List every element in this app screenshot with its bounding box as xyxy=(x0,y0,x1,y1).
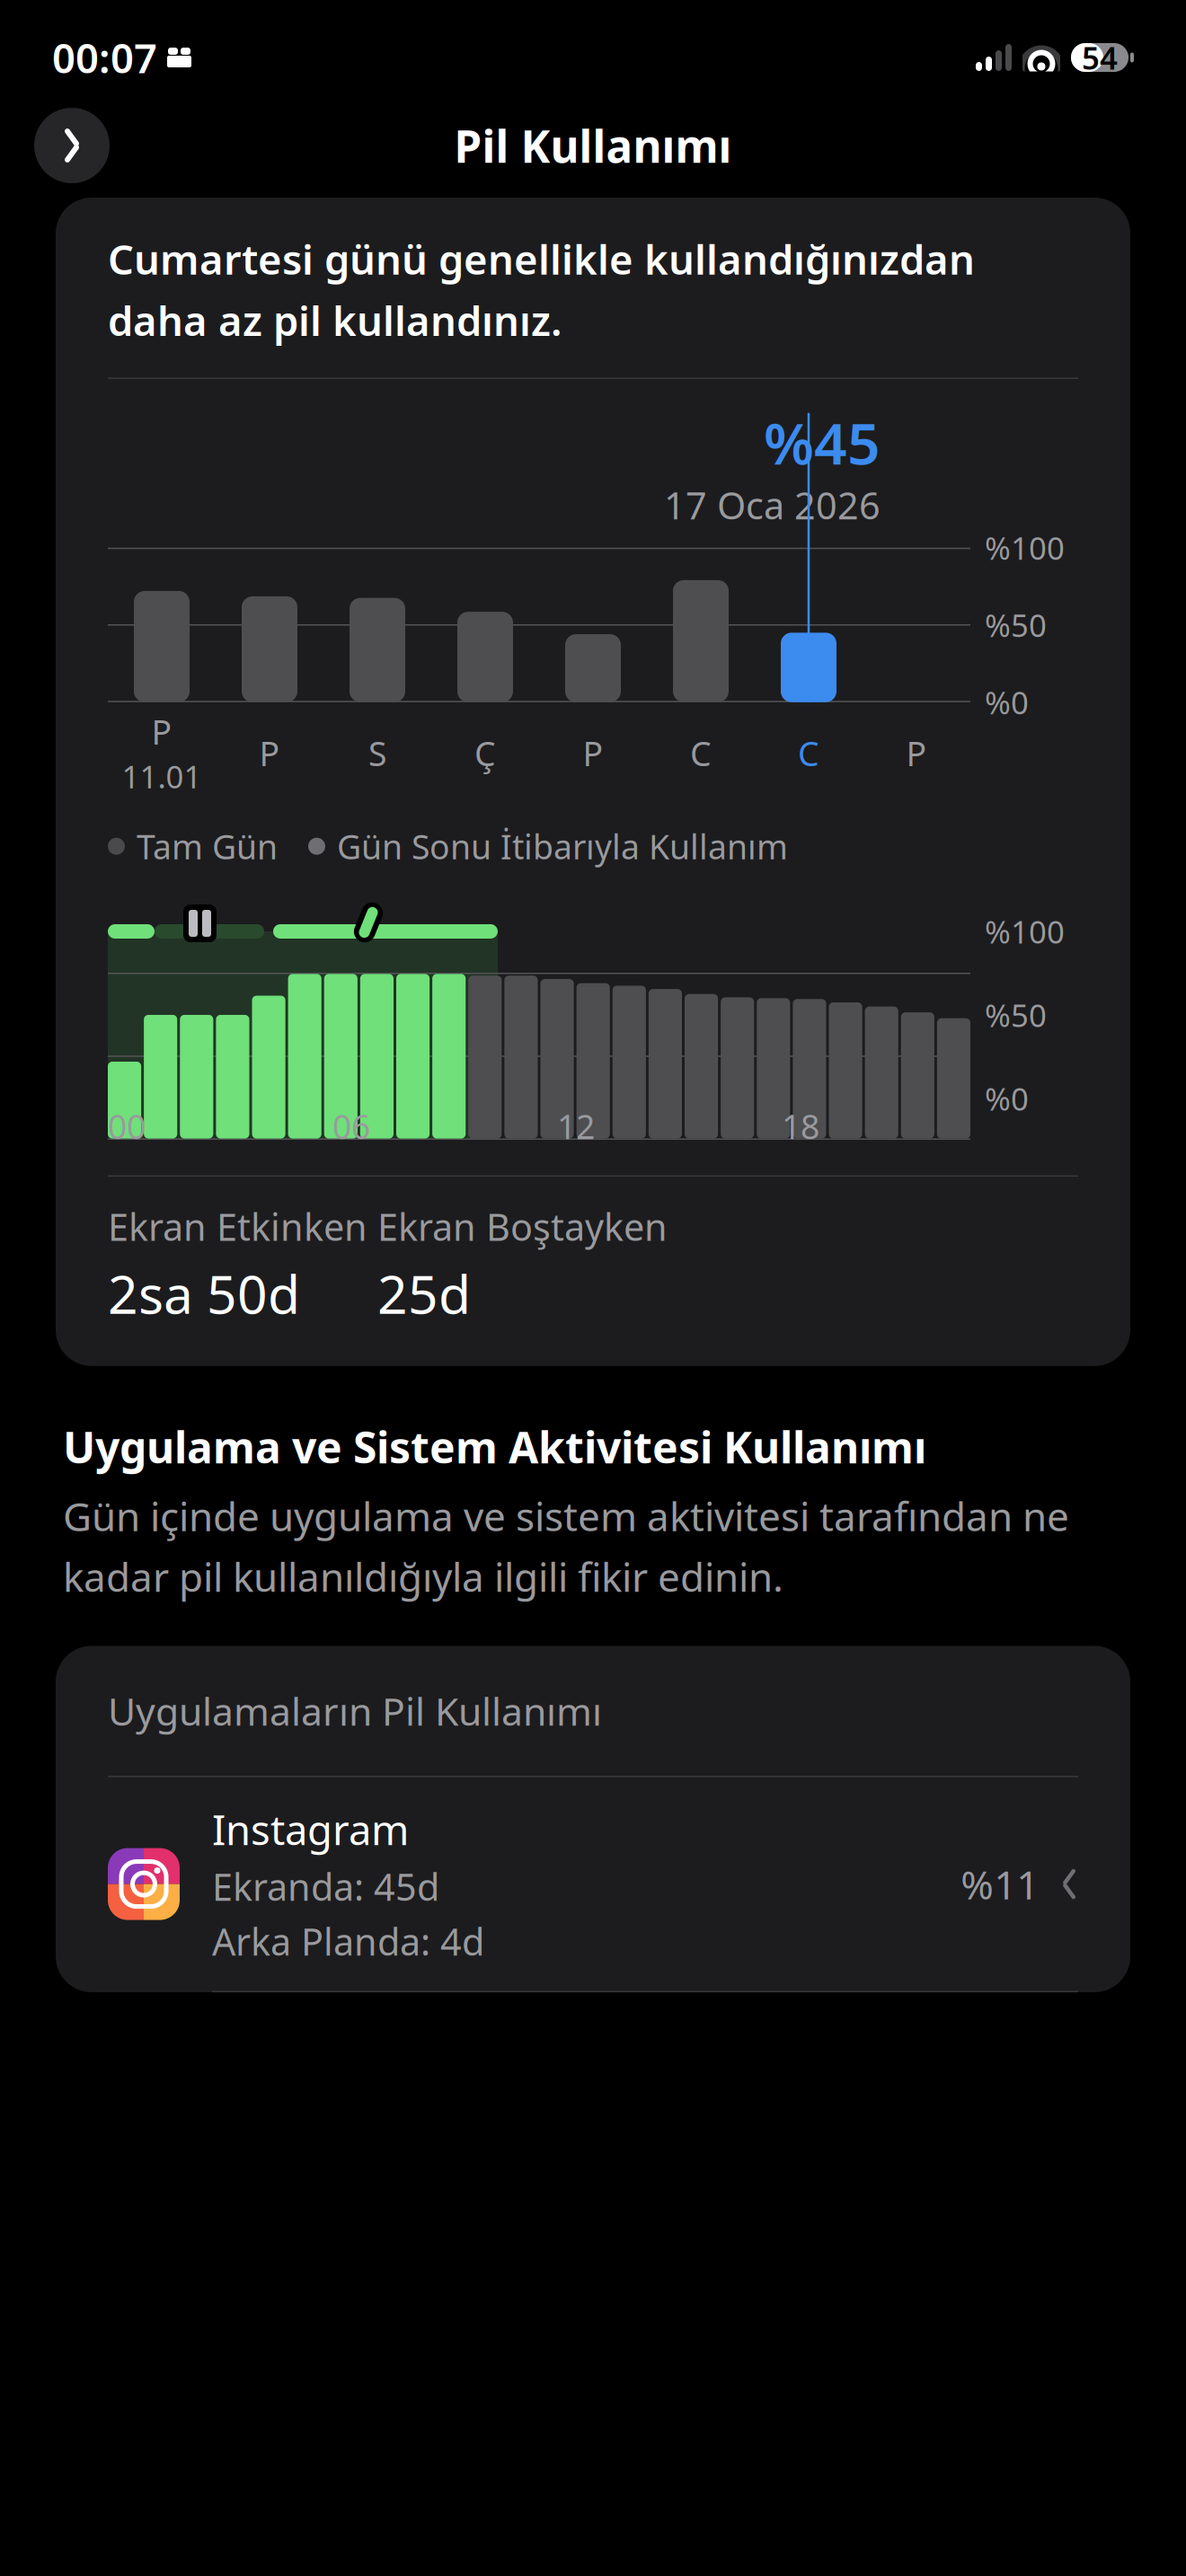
staticText: %50 xyxy=(985,994,1047,1036)
staticText: 17 Oca 2026 xyxy=(664,480,881,530)
staticText: %45 xyxy=(764,404,881,480)
staticText: %100 xyxy=(985,911,1065,952)
staticText: Instagram xyxy=(212,1802,409,1856)
staticText: %50 xyxy=(985,604,1047,646)
staticText: 54 xyxy=(1082,37,1118,78)
staticText: 00:07 xyxy=(52,30,157,85)
staticText: Arka Planda: 4d xyxy=(212,1916,484,1966)
staticText: S xyxy=(368,731,386,775)
staticText: Ç xyxy=(474,731,496,775)
staticText: 2sa 50d xyxy=(108,1258,300,1328)
staticText: %100 xyxy=(985,527,1065,568)
staticText: 06 xyxy=(332,1104,370,1148)
staticText: C xyxy=(690,731,712,775)
staticText: Ekran Etkinken xyxy=(108,1202,367,1251)
button[interactable]: Geri xyxy=(34,108,110,183)
staticText: Cumartesi günü genellikle kullandığınızd… xyxy=(108,232,975,347)
staticText: Uygulama ve Sistem Aktivitesi Kullanımı xyxy=(63,1418,926,1475)
staticText: Ekran Boştayken xyxy=(377,1202,668,1251)
staticText: %0 xyxy=(985,682,1029,723)
staticText: %11 xyxy=(961,1858,1039,1910)
staticText: P xyxy=(906,731,927,775)
staticText: Pil Kullanımı xyxy=(454,116,732,175)
staticText: P xyxy=(583,731,603,775)
staticText: C xyxy=(798,731,819,775)
staticText: 18 xyxy=(782,1104,819,1148)
staticText: 00 xyxy=(108,1104,146,1148)
staticText: Uygulamaların Pil Kullanımı xyxy=(108,1685,602,1736)
staticText: Ekranda: 45d xyxy=(212,1862,439,1911)
staticText: Gün Sonu İtibarıyla Kullanım xyxy=(337,824,788,869)
button[interactable]: Instagram xyxy=(108,1777,1078,1991)
staticText: Gün içinde uygulama ve sistem aktivitesi… xyxy=(63,1490,1069,1603)
staticText: 11.01 xyxy=(122,756,202,797)
staticText: Tam Gün xyxy=(137,824,278,869)
staticText: P xyxy=(151,709,172,754)
staticText: 12 xyxy=(557,1104,595,1148)
staticText: 25d xyxy=(377,1258,471,1328)
staticText: P xyxy=(259,731,280,775)
staticText: %0 xyxy=(985,1078,1029,1119)
